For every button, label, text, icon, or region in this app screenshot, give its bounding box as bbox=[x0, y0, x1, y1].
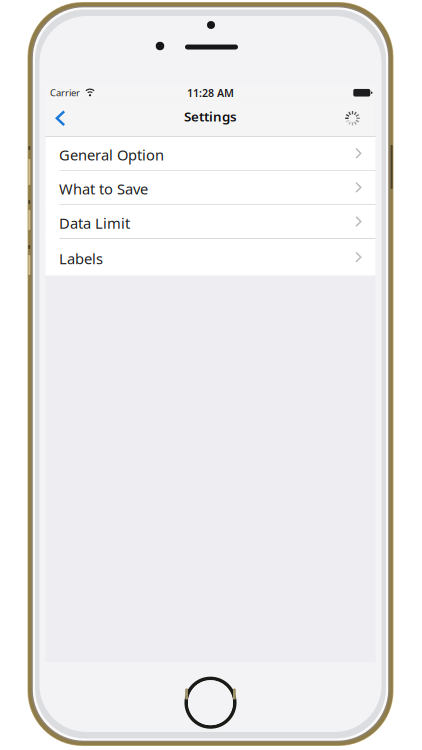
button[interactable]: Back bbox=[48, 102, 72, 134]
staticText: 11:28 AM bbox=[187, 86, 234, 100]
button[interactable]: Labels bbox=[45, 239, 375, 275]
staticText: Settings bbox=[184, 107, 237, 125]
staticText: Data Limit bbox=[59, 213, 130, 233]
staticText: Labels bbox=[59, 249, 103, 268]
staticText: Carrier bbox=[50, 87, 80, 99]
button[interactable]: General Option bbox=[45, 137, 375, 171]
button[interactable]: Loading bbox=[337, 103, 367, 133]
button[interactable]: What to Save bbox=[45, 171, 375, 205]
button[interactable]: Data Limit bbox=[45, 205, 375, 239]
staticText: General Option bbox=[59, 145, 164, 165]
staticText: What to Save bbox=[59, 179, 148, 199]
